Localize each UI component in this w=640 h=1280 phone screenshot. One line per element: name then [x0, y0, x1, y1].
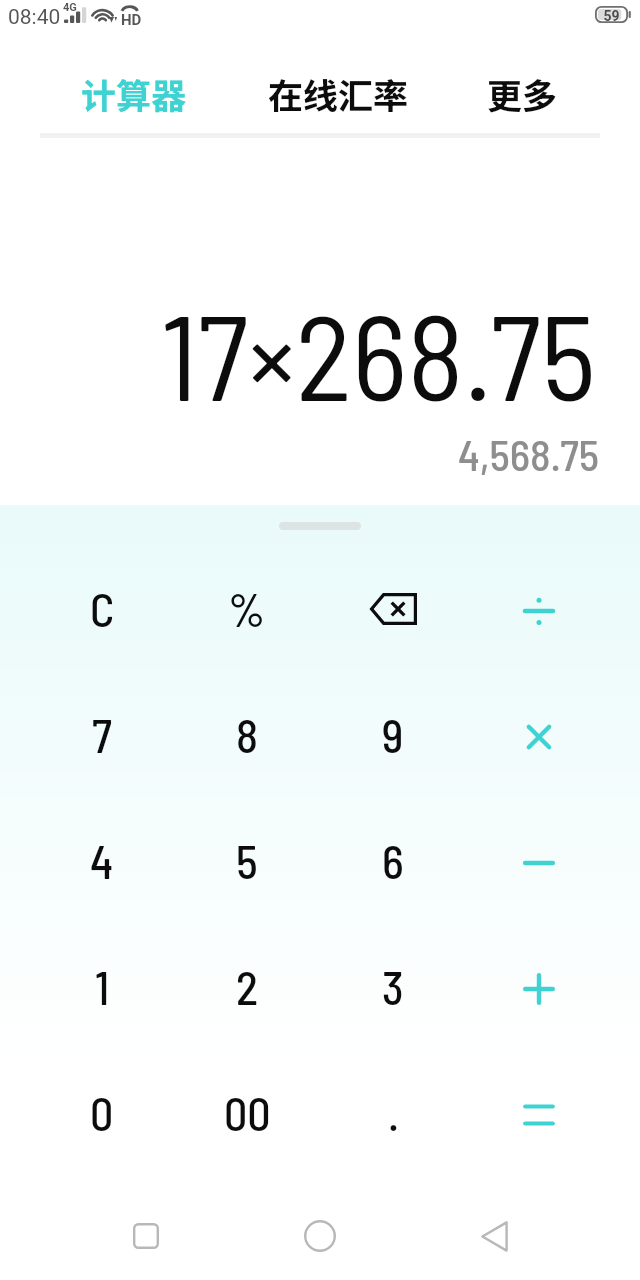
button[interactable]: 8 — [175, 671, 319, 797]
staticText: 2 — [236, 959, 259, 1014]
staticText: 1 — [95, 959, 110, 1014]
staticText: 8 — [236, 707, 258, 762]
staticText: C — [90, 581, 115, 636]
button[interactable] — [467, 1049, 611, 1175]
staticText: HD — [121, 11, 142, 29]
button[interactable]: 1 — [30, 923, 174, 1049]
staticText: . — [388, 1085, 399, 1140]
staticText: 5 — [236, 833, 258, 888]
staticText: 计算器 — [81, 68, 187, 119]
staticText: 4 — [90, 833, 114, 888]
button[interactable]: Backspace — [321, 545, 465, 671]
button[interactable] — [467, 923, 611, 1049]
staticText: 59 — [595, 8, 628, 24]
button[interactable] — [467, 545, 611, 671]
button[interactable]: C — [30, 545, 174, 671]
button[interactable]: Recents — [96, 1188, 196, 1280]
staticText: 7 — [92, 707, 112, 762]
staticText: 6 — [382, 833, 404, 888]
button[interactable]: 4 — [30, 797, 174, 923]
button[interactable]: 更多 — [437, 46, 607, 140]
button[interactable]: 在线汇率 — [253, 46, 423, 140]
staticText: 在线汇率 — [268, 68, 409, 119]
staticText: 08:40 — [8, 5, 61, 30]
staticText: 00 — [224, 1085, 271, 1140]
button[interactable]: % — [175, 545, 319, 671]
button[interactable]: 计算器 — [49, 46, 219, 140]
button[interactable] — [467, 797, 611, 923]
button[interactable]: Home — [270, 1188, 370, 1280]
button[interactable]: 7 — [30, 671, 174, 797]
button[interactable]: 0 — [30, 1049, 174, 1175]
staticText: % — [228, 581, 266, 636]
button[interactable]: . — [321, 1049, 465, 1175]
button[interactable]: 3 — [321, 923, 465, 1049]
staticText: 更多 — [487, 68, 558, 119]
staticText: 9 — [382, 707, 404, 762]
button[interactable]: 9 — [321, 671, 465, 797]
button[interactable]: 2 — [175, 923, 319, 1049]
staticText: 17×268.75 — [0, 281, 596, 425]
staticText: 4G — [63, 1, 77, 14]
button[interactable]: 5 — [175, 797, 319, 923]
button[interactable] — [467, 671, 611, 797]
button[interactable]: 00 — [175, 1049, 319, 1175]
staticText: 0 — [90, 1085, 114, 1140]
staticText: 4,568.75 — [0, 428, 599, 480]
button[interactable]: 6 — [321, 797, 465, 923]
staticText: 3 — [382, 959, 404, 1014]
button[interactable]: Back — [444, 1188, 544, 1280]
